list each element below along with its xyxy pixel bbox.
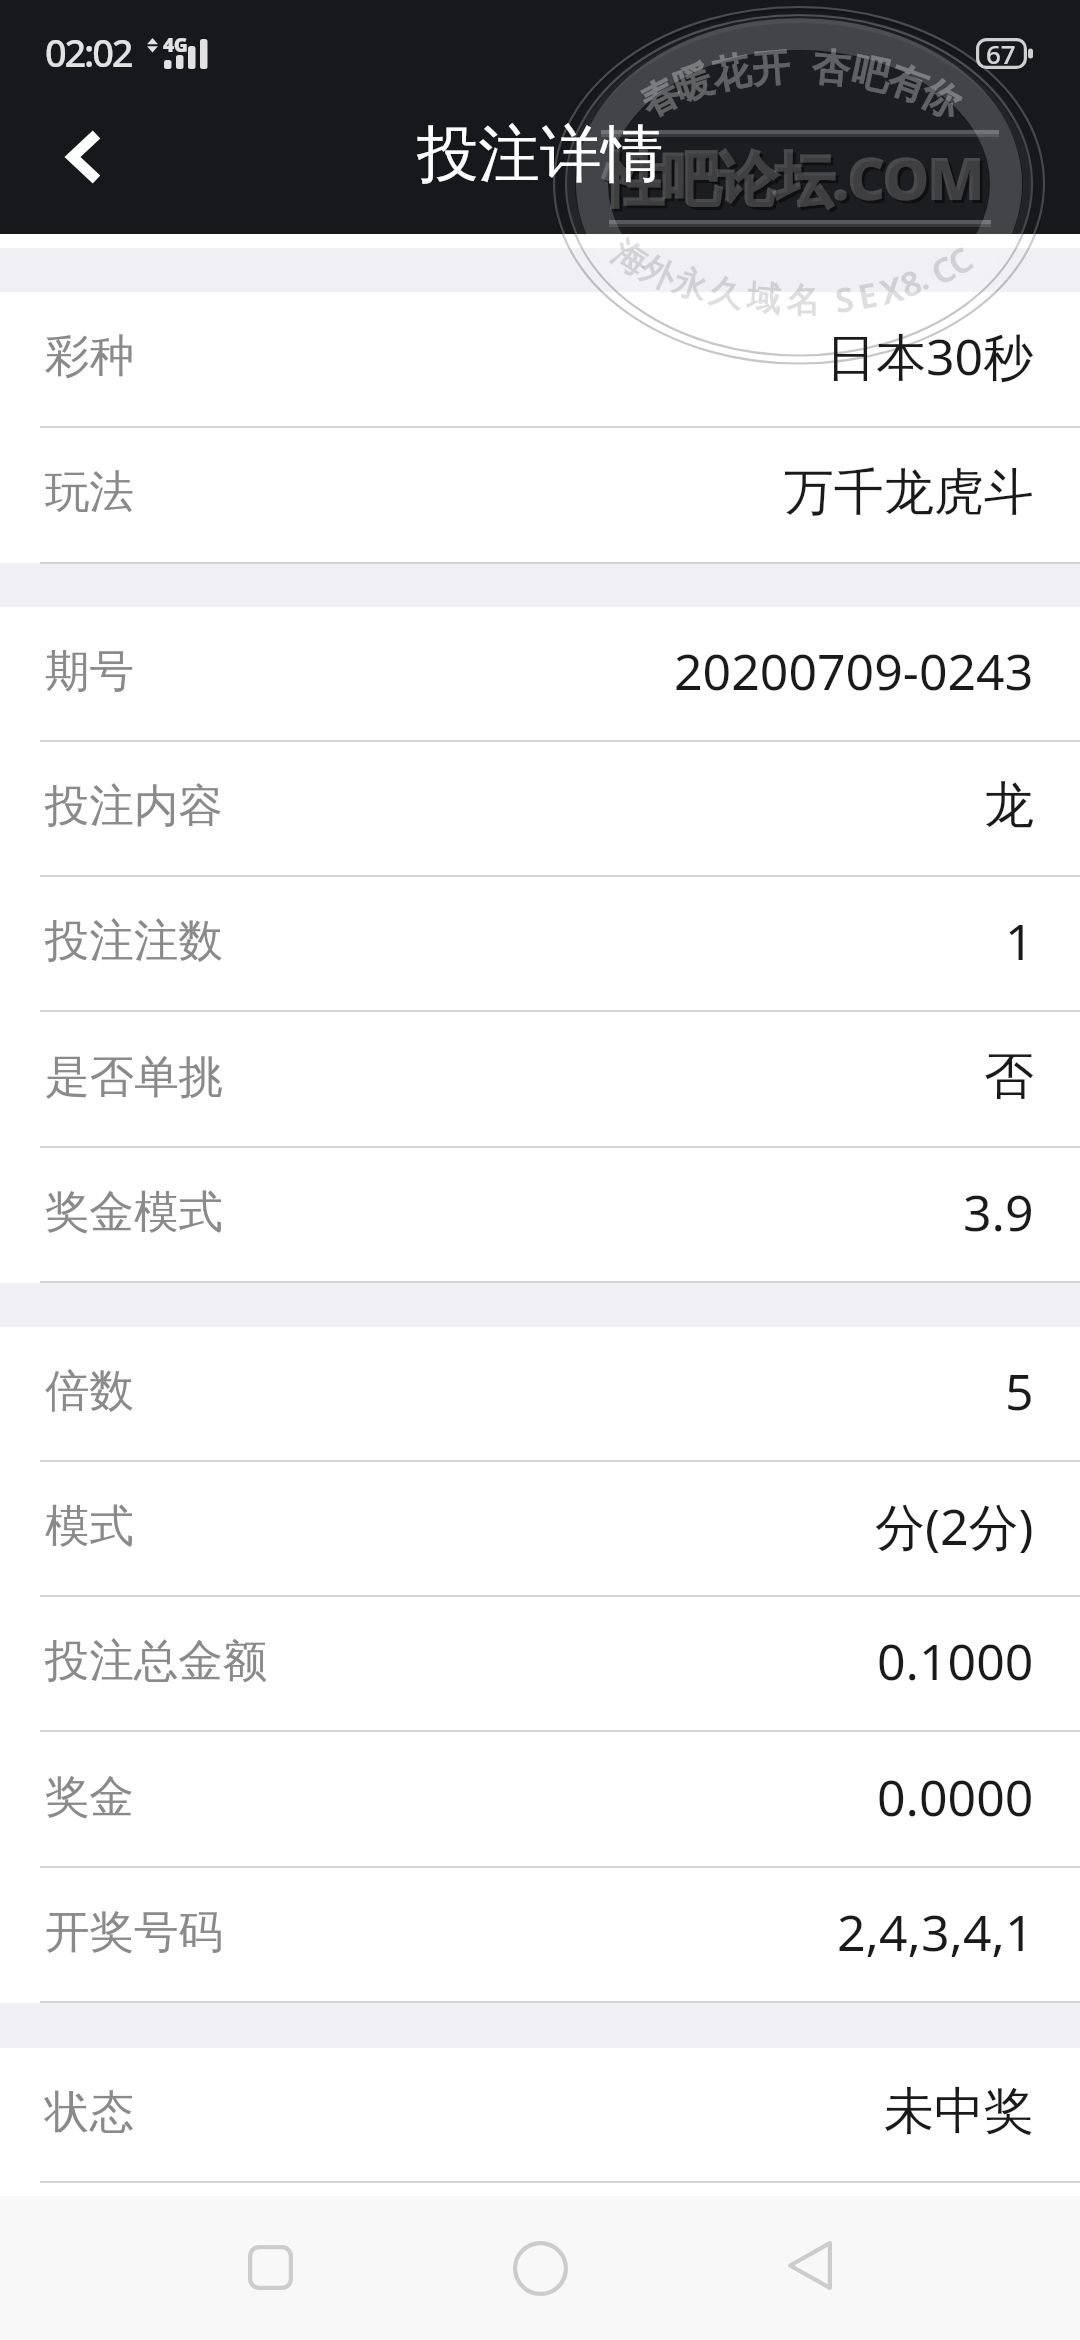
button[interactable]: 玩法 (0, 428, 1080, 564)
staticText: 投注总金额 (45, 1633, 268, 1689)
staticText: 是否单挑 (45, 1049, 223, 1105)
staticText: 万千龙虎斗 (784, 461, 1034, 524)
button[interactable]: 投注总金额 (0, 1597, 1080, 1732)
staticText: 倍数 (45, 1363, 134, 1419)
staticText: 暖 (667, 54, 719, 112)
button[interactable]: 是否单挑 (0, 1013, 1080, 1148)
staticText (782, 42, 792, 94)
staticText: 彩种 (45, 328, 134, 384)
button[interactable]: 期号 (0, 607, 1080, 742)
button[interactable]: 投注注数 (0, 877, 1080, 1012)
staticText: 玩法 (45, 464, 134, 520)
staticText: 模式 (45, 1498, 134, 1554)
staticText: 吧 (847, 47, 895, 101)
staticText: X (874, 265, 909, 315)
button[interactable]: Back (29, 102, 139, 212)
staticText: 性吧论坛.COM (604, 137, 983, 218)
staticText: 久 (705, 269, 747, 318)
staticText (812, 278, 825, 324)
staticText: 1 (1005, 907, 1034, 975)
staticText: 性吧论坛.COM (607, 140, 986, 221)
staticText: 0.1000 (877, 1627, 1034, 1695)
staticText: E (854, 270, 882, 319)
staticText: 开 (750, 43, 792, 93)
button[interactable]: 状态 (0, 2048, 1080, 2183)
button[interactable]: Home (450, 2196, 630, 2340)
staticText: 投注内容 (45, 778, 223, 834)
button[interactable]: Back (719, 2196, 899, 2340)
staticText: . (908, 254, 935, 300)
staticText: 投注注数 (45, 913, 223, 969)
button[interactable]: 开奖号码 (0, 1868, 1080, 2003)
staticText: 春 (632, 67, 688, 127)
staticText: 5 (1005, 1357, 1034, 1425)
staticText: 有 (882, 55, 934, 113)
staticText: 外 (634, 247, 682, 300)
staticText: 投注详情 (417, 116, 663, 193)
button[interactable]: 倍数 (0, 1327, 1080, 1462)
staticText: S (832, 275, 857, 323)
staticText: 花 (708, 46, 754, 100)
button[interactable]: 彩种 (0, 292, 1080, 428)
staticText: 期号 (45, 643, 134, 699)
staticText: 龙 (984, 774, 1034, 837)
staticText: 永 (667, 259, 712, 310)
staticText: 3.9 (963, 1178, 1034, 1246)
staticText: C (938, 236, 981, 286)
staticText: 分(2分) (875, 1492, 1034, 1560)
staticText: 否 (984, 1045, 1034, 1108)
staticText: 未中奖 (884, 2080, 1034, 2143)
button[interactable]: 奖金模式 (0, 1148, 1080, 1283)
staticText: 开奖号码 (45, 1904, 223, 1960)
staticText: 4G (163, 32, 188, 58)
button[interactable]: 投注内容 (0, 742, 1080, 877)
button[interactable]: 奖金 (0, 1733, 1080, 1868)
staticText: 你 (913, 69, 969, 129)
staticText: 奖金模式 (45, 1184, 223, 1240)
staticText: 海 (604, 231, 656, 286)
button[interactable]: 模式 (0, 1462, 1080, 1597)
staticText: 0.0000 (877, 1763, 1034, 1831)
staticText: 20200709-0243 (674, 637, 1034, 705)
staticText: 杏 (810, 42, 852, 94)
staticText: 02:02 (45, 26, 132, 78)
staticText: C (923, 244, 963, 295)
button[interactable]: Recents (180, 2196, 360, 2340)
staticText: 8 (894, 258, 928, 308)
staticText: 奖金 (45, 1769, 134, 1825)
staticText: 名 (786, 279, 820, 322)
staticText: 域 (745, 276, 783, 321)
staticText: 状态 (45, 2084, 134, 2140)
staticText: 67 (986, 36, 1016, 71)
staticText: 2,4,3,4,1 (837, 1898, 1034, 1966)
staticText: 日本30秒 (826, 322, 1034, 390)
